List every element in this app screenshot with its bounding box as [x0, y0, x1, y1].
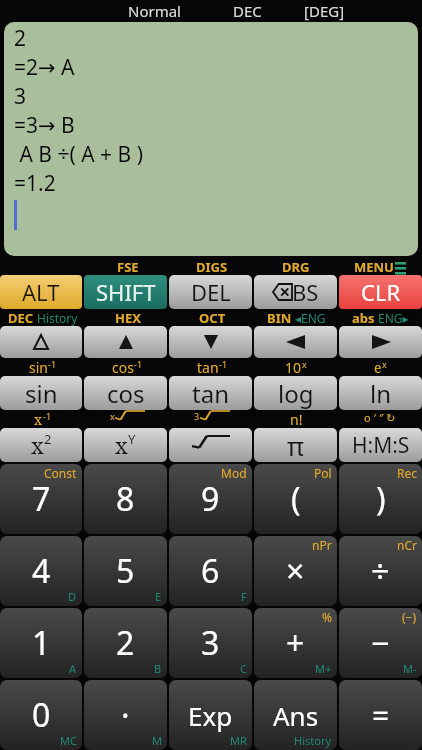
button[interactable]: Up outline — [0, 326, 82, 358]
staticText: MC — [60, 733, 77, 748]
button[interactable]: ) — [339, 464, 422, 534]
staticText: cos — [112, 358, 134, 376]
staticText: Mod — [221, 465, 247, 481]
staticText: Rec — [397, 465, 417, 481]
button[interactable]: Ans — [254, 680, 337, 750]
button[interactable]: ln — [339, 376, 422, 410]
staticText: x — [110, 410, 115, 422]
staticText: 3 — [14, 82, 27, 111]
button[interactable]: 3 — [169, 608, 252, 678]
button[interactable]: + — [254, 608, 337, 678]
staticText: DEC — [8, 309, 34, 326]
staticText: o ′ ″ ↻ — [364, 410, 396, 425]
button[interactable] — [169, 428, 252, 462]
staticText: D — [68, 589, 77, 604]
staticText: Ans — [273, 698, 319, 733]
button[interactable]: Up — [84, 326, 167, 358]
staticText: abs — [352, 309, 375, 326]
staticText: M+ — [315, 661, 332, 676]
staticText: tan — [197, 358, 219, 376]
staticText: + — [286, 621, 305, 665]
button[interactable]: − — [339, 608, 422, 678]
button[interactable]: 6 — [169, 536, 252, 606]
button[interactable]: 0 — [0, 680, 82, 750]
staticText: History — [37, 310, 78, 326]
staticText: -1 — [134, 358, 143, 370]
button[interactable]: CLR — [339, 275, 422, 309]
staticText: OCT — [199, 309, 226, 326]
staticText: = — [372, 695, 390, 736]
button[interactable]: 2 — [4, 22, 418, 256]
staticText: log — [278, 377, 314, 410]
staticText: ln — [370, 377, 392, 410]
button[interactable]: ALT — [0, 275, 82, 309]
staticText: Exp — [188, 698, 233, 733]
button[interactable]: BS — [254, 275, 337, 309]
staticText: (−) — [402, 609, 417, 625]
staticText: A — [69, 661, 77, 676]
staticText: × — [286, 549, 305, 593]
button[interactable]: = — [339, 680, 422, 750]
staticText: DRG — [282, 258, 310, 275]
staticText: SHIFT — [96, 277, 156, 307]
staticText: x — [115, 430, 128, 460]
button[interactable]: 9 — [169, 464, 252, 534]
staticText: cos — [107, 377, 145, 410]
staticText: BIN — [267, 309, 292, 326]
staticText: [DEG] — [304, 1, 345, 21]
staticText: nCr — [397, 537, 417, 553]
staticText: 3 — [194, 410, 200, 422]
staticText: E — [155, 589, 162, 604]
staticText: CLR — [361, 277, 401, 307]
staticText: e — [374, 358, 382, 376]
button[interactable]: ( — [254, 464, 337, 534]
staticText: ◂ENG — [295, 310, 326, 326]
staticText: x — [382, 358, 387, 370]
staticText: sin — [29, 358, 48, 376]
button[interactable]: SHIFT — [84, 275, 167, 309]
button[interactable]: ÷ — [339, 536, 422, 606]
button[interactable]: DEL — [169, 275, 252, 309]
staticText: nPr — [312, 537, 332, 553]
button[interactable]: x — [0, 428, 82, 462]
staticText: 6 — [201, 549, 220, 593]
button[interactable]: Right — [339, 326, 422, 358]
staticText: x — [302, 358, 307, 370]
button[interactable]: x — [84, 428, 167, 462]
staticText: Y — [128, 430, 136, 448]
button[interactable]: 5 — [84, 536, 167, 606]
button[interactable]: 8 — [84, 464, 167, 534]
staticText: Pol — [314, 465, 332, 481]
staticText: · — [121, 693, 130, 737]
staticText: H:M:S — [352, 431, 410, 460]
button[interactable]: Left — [254, 326, 337, 358]
button[interactable]: sin — [0, 376, 82, 410]
staticText: HEX — [115, 309, 141, 326]
staticText: Normal — [128, 1, 181, 21]
button[interactable]: 4 — [0, 536, 82, 606]
button[interactable]: Down — [169, 326, 252, 358]
button[interactable]: log — [254, 376, 337, 410]
button[interactable]: tan — [169, 376, 252, 410]
staticText: M- — [403, 661, 417, 676]
staticText: DIGS — [196, 258, 228, 275]
staticText: DEC — [233, 1, 262, 21]
button[interactable]: × — [254, 536, 337, 606]
button[interactable]: 1 — [0, 608, 82, 678]
button[interactable]: 2 — [84, 608, 167, 678]
staticText: BS — [292, 277, 319, 307]
button[interactable]: H:M:S — [339, 428, 422, 462]
button[interactable]: Exp — [169, 680, 252, 750]
staticText: 2 — [44, 430, 52, 448]
staticText: − — [371, 621, 390, 665]
staticText: ( — [291, 477, 301, 521]
staticText: sin — [25, 377, 58, 410]
staticText: 3 — [201, 621, 220, 665]
button[interactable]: 7 — [0, 464, 82, 534]
button[interactable]: cos — [84, 376, 167, 410]
staticText: History — [294, 733, 332, 748]
button[interactable]: π — [254, 428, 337, 462]
button[interactable]: · — [84, 680, 167, 750]
staticText: % — [322, 609, 332, 625]
staticText: DEL — [191, 277, 231, 307]
